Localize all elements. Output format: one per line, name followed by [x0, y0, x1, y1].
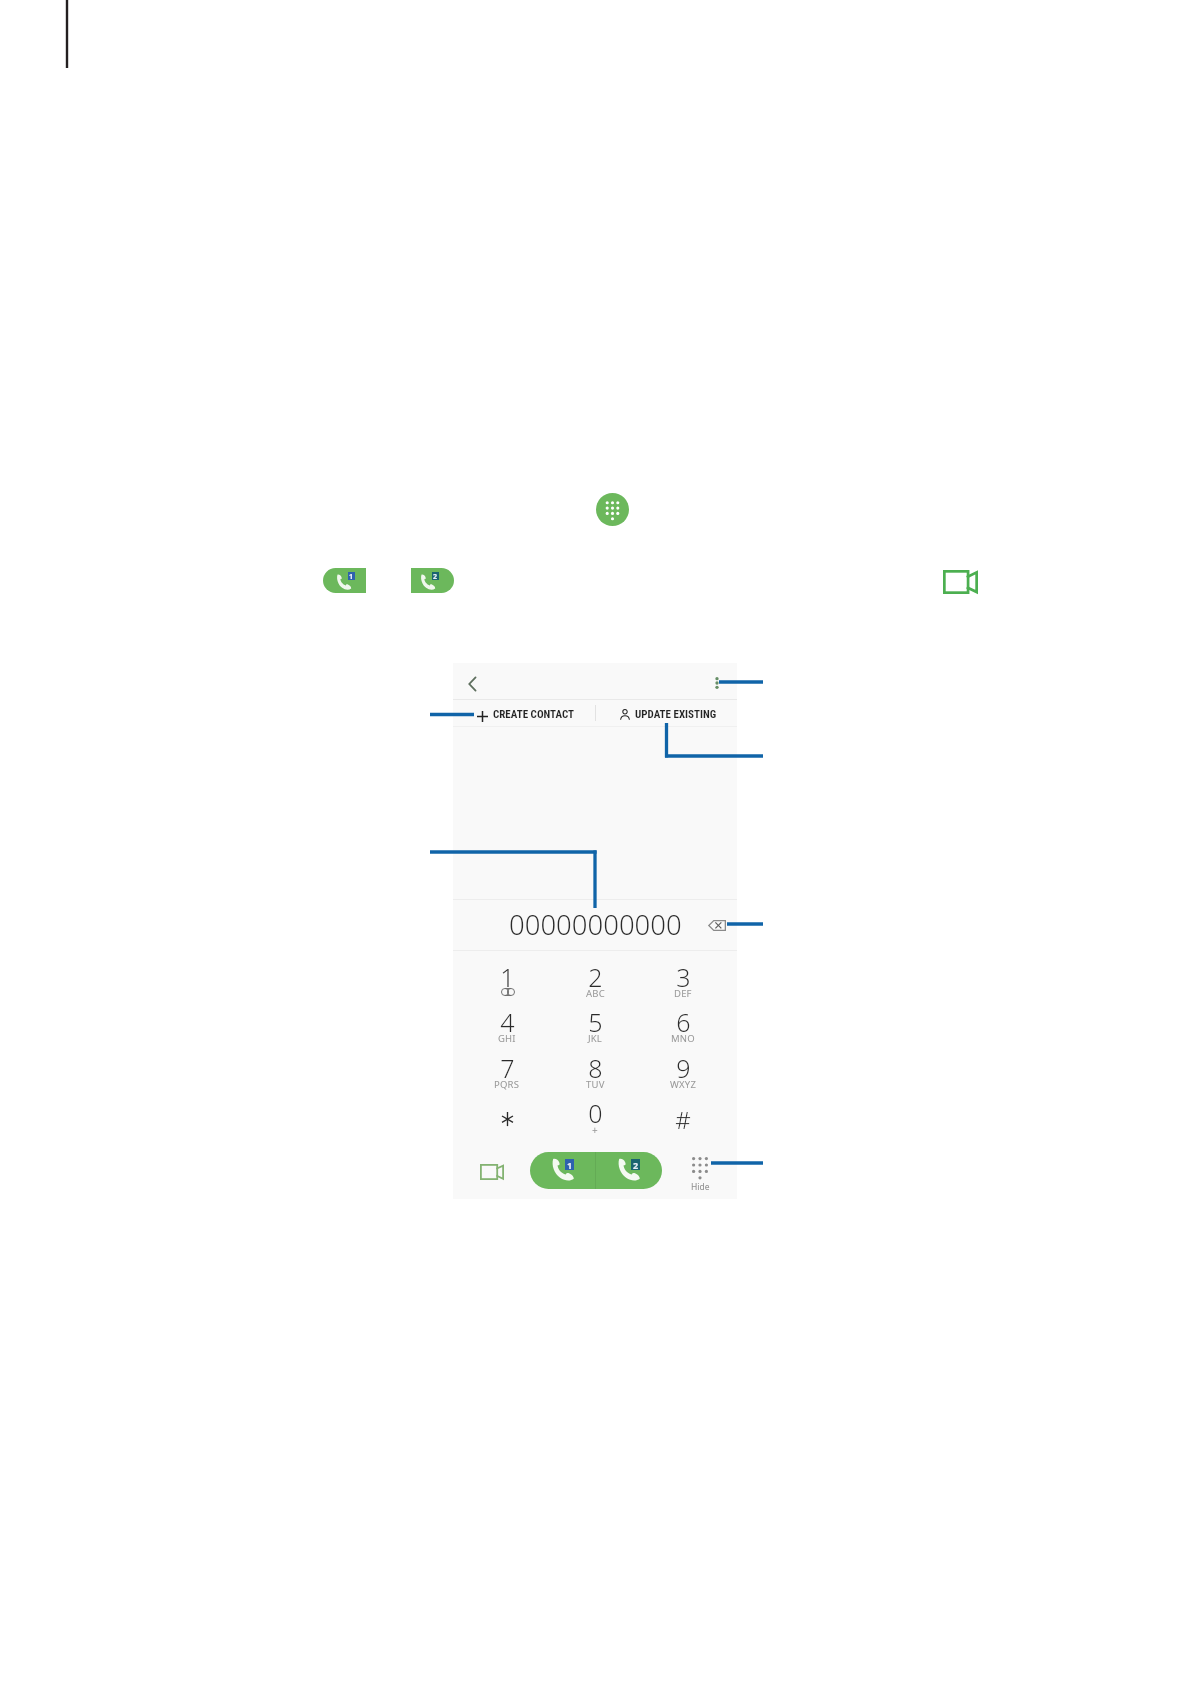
staticText: #: [675, 1103, 691, 1136]
staticText: 7: [500, 1051, 515, 1085]
button[interactable]: Back: [460, 671, 486, 697]
button[interactable]: 8: [551, 1051, 639, 1096]
button[interactable]: [463, 1096, 551, 1141]
button[interactable]: 6: [639, 1005, 727, 1050]
button[interactable]: Call with SIM 1: [530, 1152, 595, 1189]
staticText: 4: [500, 1005, 515, 1039]
button[interactable]: Hide keypad: [687, 1152, 719, 1190]
staticText: ABC: [586, 987, 605, 1000]
button[interactable]: Video call: [476, 1159, 508, 1185]
staticText: 2: [633, 1159, 639, 1170]
staticText: MNO: [671, 1032, 695, 1045]
staticText: DEF: [674, 987, 692, 1000]
staticText: 2: [433, 572, 438, 580]
staticText: WXYZ: [670, 1078, 697, 1091]
staticText: 3: [676, 960, 691, 994]
staticText: 6: [676, 1005, 691, 1039]
staticText: 8: [588, 1051, 603, 1085]
staticText: +: [592, 1123, 598, 1137]
button[interactable]: 4: [463, 1005, 551, 1050]
button[interactable]: Video call: [943, 570, 978, 594]
button[interactable]: CREATE CONTACT: [453, 700, 595, 726]
staticText: JKL: [588, 1032, 603, 1045]
staticText: PQRS: [494, 1078, 520, 1091]
button[interactable]: Call SIM 2: [411, 568, 454, 593]
staticText: 2: [588, 960, 603, 994]
button[interactable]: 1: [463, 960, 551, 1005]
button[interactable]: #: [639, 1096, 727, 1141]
button[interactable]: Backspace: [701, 913, 727, 933]
staticText: GHI: [498, 1032, 516, 1045]
staticText: 00000000000: [509, 906, 682, 943]
button[interactable]: 5: [551, 1005, 639, 1050]
button[interactable]: 9: [639, 1051, 727, 1096]
staticText: 1: [500, 960, 515, 994]
staticText: CREATE CONTACT: [493, 708, 574, 721]
staticText: Hide: [691, 1181, 710, 1193]
staticText: 5: [588, 1005, 603, 1039]
button[interactable]: Keypad: [596, 493, 629, 526]
button[interactable]: UPDATE EXISTING: [595, 700, 737, 726]
staticText: UPDATE EXISTING: [635, 708, 717, 721]
button[interactable]: 3: [639, 960, 727, 1005]
button[interactable]: Call SIM 1: [323, 568, 366, 593]
staticText: 1: [349, 572, 354, 580]
button[interactable]: More options: [705, 671, 728, 694]
button[interactable]: Call with SIM 2: [596, 1152, 662, 1189]
staticText: TUV: [586, 1078, 605, 1091]
button[interactable]: 2: [551, 960, 639, 1005]
staticText: 0: [588, 1096, 603, 1130]
staticText: 1: [567, 1159, 573, 1170]
button[interactable]: 0: [551, 1096, 639, 1141]
button[interactable]: 7: [463, 1051, 551, 1096]
staticText: 9: [676, 1051, 691, 1085]
